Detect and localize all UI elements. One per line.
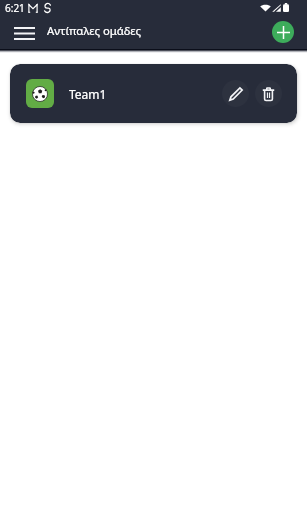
button[interactable]: Team1 (10, 64, 297, 123)
button[interactable]: Delete (255, 80, 282, 107)
button[interactable]: Add team (272, 21, 294, 43)
staticText: Team1 (69, 86, 107, 102)
button[interactable]: Edit (222, 80, 249, 107)
staticText: 6:21 (5, 1, 25, 15)
staticText: Αντίπαλες ομάδες (47, 23, 141, 38)
button[interactable]: Open navigation menu (8, 21, 40, 45)
